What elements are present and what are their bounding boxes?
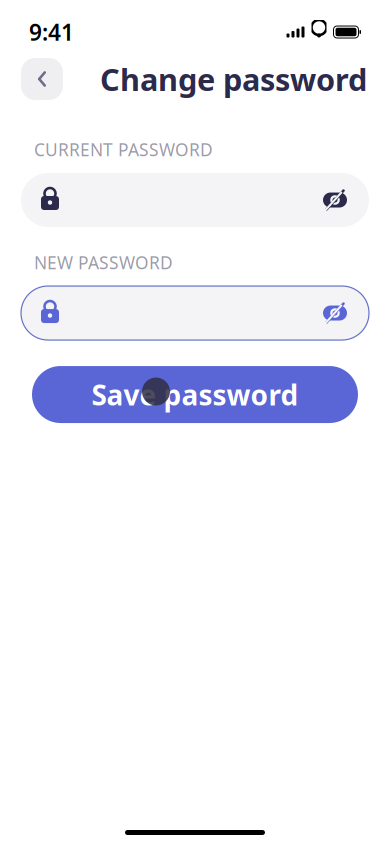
button[interactable]: Current password field — [21, 173, 369, 227]
button[interactable]: Save password — [32, 366, 358, 423]
staticText: NEW PASSWORD — [34, 251, 173, 274]
button[interactable]: Back — [21, 58, 63, 100]
staticText: 9:41 — [29, 17, 74, 47]
staticText: Save password — [91, 376, 298, 413]
staticText: CURRENT PASSWORD — [34, 138, 213, 161]
button[interactable]: New password field — [21, 286, 369, 340]
staticText: Change password — [100, 59, 367, 99]
